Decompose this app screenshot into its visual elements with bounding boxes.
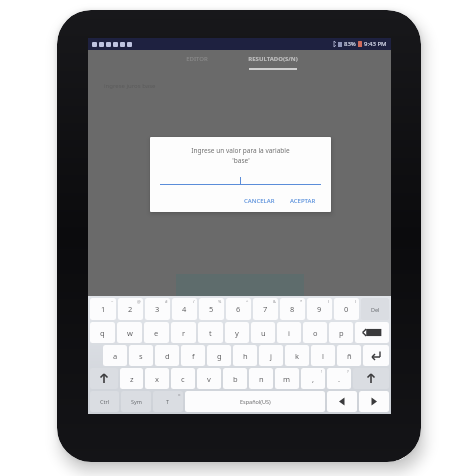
staticText: ingrese juros base: [104, 82, 156, 90]
button[interactable]: w: [117, 322, 142, 343]
button[interactable]: Left: [327, 391, 357, 412]
staticText: 8: [290, 304, 295, 314]
staticText: t: [209, 328, 212, 338]
button[interactable]: Del: [361, 298, 389, 320]
button[interactable]: 4: [172, 298, 197, 320]
staticText: T: [166, 398, 170, 405]
button[interactable]: 5: [199, 298, 224, 320]
button[interactable]: 8: [280, 298, 305, 320]
button[interactable]: v: [197, 368, 221, 389]
staticText: ~: [111, 299, 114, 304]
button[interactable]: 0: [334, 298, 359, 320]
button[interactable]: .: [327, 368, 351, 389]
staticText: Ingrese un valor para la variable: [191, 146, 290, 155]
button[interactable]: 9: [307, 298, 332, 320]
staticText: l: [322, 351, 324, 361]
staticText: 9: [317, 304, 322, 314]
staticText: o: [178, 392, 181, 397]
staticText: @: [137, 299, 141, 304]
staticText: e: [154, 328, 159, 338]
button[interactable]: EDITOR: [164, 50, 230, 68]
button[interactable]: Ctrl: [90, 391, 119, 412]
staticText: g: [217, 351, 222, 361]
staticText: Ctrl: [100, 398, 110, 405]
staticText: i: [288, 328, 290, 338]
button[interactable]: o: [303, 322, 327, 343]
button[interactable]: ñ: [337, 345, 361, 366]
button[interactable]: Español(US): [185, 391, 325, 412]
button[interactable]: i: [277, 322, 301, 343]
button[interactable]: y: [225, 322, 249, 343]
button[interactable]: d: [155, 345, 179, 366]
staticText: r: [182, 328, 186, 338]
staticText: 83%: [344, 40, 356, 48]
staticText: q: [100, 328, 105, 338]
staticText: 5: [209, 304, 214, 314]
button[interactable]: Backspace: [355, 322, 389, 343]
staticText: 9:43 PM: [364, 40, 387, 48]
staticText: ): [355, 299, 357, 304]
staticText: c: [181, 374, 185, 384]
button[interactable]: p: [329, 322, 353, 343]
staticText: d: [165, 351, 170, 361]
button[interactable]: e: [144, 322, 169, 343]
button[interactable]: t: [198, 322, 223, 343]
button[interactable]: b: [223, 368, 247, 389]
button[interactable]: Sym: [121, 391, 151, 412]
staticText: m: [283, 374, 291, 384]
staticText: y: [235, 328, 239, 338]
staticText: ,: [312, 374, 315, 384]
button[interactable]: [160, 175, 321, 185]
staticText: CANCELAR: [244, 197, 275, 205]
staticText: 1: [101, 304, 106, 314]
button[interactable]: u: [251, 322, 275, 343]
button[interactable]: g: [207, 345, 231, 366]
staticText: EDITOR: [186, 55, 208, 63]
button[interactable]: a: [103, 345, 127, 366]
staticText: (: [328, 299, 330, 304]
button[interactable]: l: [311, 345, 335, 366]
button[interactable]: Right: [359, 391, 389, 412]
button[interactable]: ACEPTAR: [285, 194, 321, 208]
button[interactable]: Shift: [90, 368, 118, 389]
button[interactable]: 2: [118, 298, 143, 320]
staticText: a: [113, 351, 118, 361]
button[interactable]: s: [129, 345, 153, 366]
button[interactable]: 3: [145, 298, 170, 320]
button[interactable]: 6: [226, 298, 251, 320]
button[interactable]: j: [259, 345, 283, 366]
button[interactable]: x: [145, 368, 169, 389]
button[interactable]: Enter: [363, 345, 389, 366]
staticText: h: [243, 351, 248, 361]
staticText: n: [259, 374, 264, 384]
staticText: !: [321, 369, 323, 374]
button[interactable]: RESULTADO(S/N): [230, 50, 316, 70]
button[interactable]: 1: [90, 298, 116, 320]
button[interactable]: n: [249, 368, 273, 389]
staticText: Español(US): [240, 398, 271, 405]
button[interactable]: ,: [301, 368, 325, 389]
button[interactable]: f: [181, 345, 205, 366]
staticText: ñ: [347, 351, 352, 361]
button[interactable]: Shift: [353, 368, 389, 389]
staticText: 4: [182, 304, 187, 314]
staticText: j: [270, 351, 272, 361]
button[interactable]: c: [171, 368, 195, 389]
button[interactable]: 7: [253, 298, 278, 320]
button[interactable]: z: [120, 368, 143, 389]
button[interactable]: r: [171, 322, 196, 343]
staticText: /: [193, 299, 195, 304]
staticText: #: [165, 299, 168, 304]
staticText: 6: [236, 304, 241, 314]
button[interactable]: h: [233, 345, 257, 366]
staticText: Del: [371, 306, 380, 313]
staticText: ^: [246, 299, 249, 304]
button[interactable]: CANCELAR: [239, 194, 280, 208]
button[interactable]: T: [153, 391, 183, 412]
button[interactable]: m: [275, 368, 299, 389]
staticText: x: [155, 374, 159, 384]
button[interactable]: k: [285, 345, 309, 366]
staticText: *: [300, 299, 303, 304]
staticText: 3: [155, 304, 160, 314]
button[interactable]: q: [90, 322, 115, 343]
